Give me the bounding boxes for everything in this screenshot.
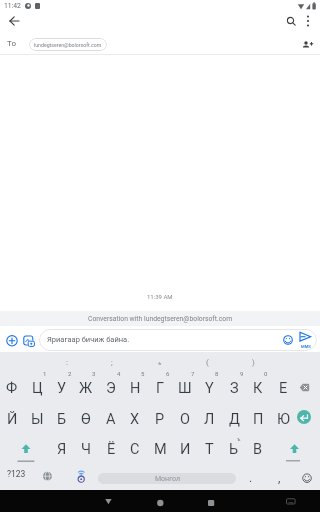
- button[interactable]: В: [246, 434, 270, 464]
- button[interactable]: [4, 333, 20, 349]
- staticText: :: [66, 358, 68, 367]
- button[interactable]: Е: [271, 373, 295, 403]
- staticText: Монгол: [155, 475, 180, 483]
- button[interactable]: [10, 434, 42, 463]
- staticText: У: [57, 380, 67, 397]
- button[interactable]: Ф: [0, 373, 24, 403]
- button[interactable]: М: [148, 434, 172, 464]
- staticText: Я: [57, 441, 67, 458]
- button[interactable]: [148, 490, 172, 512]
- button[interactable]: [295, 463, 319, 490]
- button[interactable]: [284, 490, 300, 512]
- button[interactable]: Ч: [74, 434, 98, 464]
- button[interactable]: С: [123, 434, 147, 464]
- button[interactable]: Ц: [25, 373, 49, 403]
- button[interactable]: [279, 434, 311, 463]
- button[interactable]: П: [246, 404, 270, 434]
- button[interactable]: [199, 490, 223, 512]
- staticText: Д: [229, 411, 240, 428]
- button[interactable]: [39, 329, 317, 351]
- button[interactable]: Ү: [197, 373, 221, 403]
- staticText: 4: [117, 370, 121, 377]
- button[interactable]: [279, 9, 303, 33]
- button[interactable]: [296, 36, 316, 54]
- staticText: Ю: [277, 411, 290, 428]
- button[interactable]: [69, 461, 93, 490]
- staticText: Х: [130, 411, 140, 428]
- button[interactable]: К: [246, 373, 270, 403]
- staticText: Н: [130, 380, 141, 397]
- staticText: Р: [155, 411, 165, 428]
- button[interactable]: Б: [50, 404, 74, 434]
- staticText: Ү: [205, 380, 214, 397]
- button[interactable]: [35, 461, 59, 490]
- staticText: 5: [141, 370, 145, 377]
- button[interactable]: У: [50, 373, 74, 403]
- button[interactable]: [297, 410, 311, 424]
- staticText: Ж: [79, 380, 93, 397]
- button[interactable]: Ё: [99, 434, 123, 464]
- staticText: 7: [191, 370, 195, 377]
- staticText: 11:39 AM: [147, 293, 173, 300]
- button[interactable]: lundegtseren@bolorsoft.com: [29, 38, 107, 51]
- staticText: ;: [111, 358, 113, 367]
- staticText: ъ: [237, 436, 241, 442]
- staticText: Яриагаар бичиж байна.: [47, 335, 130, 344]
- staticText: З: [230, 380, 239, 397]
- button[interactable]: [96, 490, 120, 512]
- staticText: 3: [92, 370, 96, 377]
- button[interactable]: Ы: [25, 404, 49, 434]
- button[interactable]: [296, 329, 316, 351]
- staticText: К: [253, 380, 263, 397]
- button[interactable]: Э: [99, 373, 123, 403]
- staticText: С: [130, 441, 140, 458]
- button[interactable]: ,: [267, 463, 291, 493]
- staticText: Ь: [229, 441, 239, 458]
- button[interactable]: Л: [197, 404, 221, 434]
- staticText: Б: [57, 411, 67, 428]
- staticText: М: [154, 441, 167, 458]
- staticText: Ш: [178, 380, 192, 397]
- staticText: ,: [278, 471, 281, 485]
- staticText: 6: [166, 370, 170, 377]
- button[interactable]: З: [222, 373, 246, 403]
- staticText: А: [106, 411, 116, 428]
- button[interactable]: Ж: [74, 373, 98, 403]
- button[interactable]: Н: [123, 373, 147, 403]
- button[interactable]: Монгол: [98, 473, 236, 484]
- button[interactable]: [281, 333, 295, 347]
- staticText: Ы: [31, 411, 44, 428]
- staticText: Э: [106, 380, 116, 397]
- button[interactable]: Д: [222, 404, 246, 434]
- button[interactable]: А: [99, 404, 123, 434]
- staticText: Ч: [81, 441, 91, 458]
- staticText: П: [253, 411, 264, 428]
- button[interactable]: О: [173, 404, 197, 434]
- button[interactable]: Г: [148, 373, 172, 403]
- button[interactable]: [298, 9, 318, 33]
- staticText: 0: [264, 370, 268, 377]
- button[interactable]: Х: [123, 404, 147, 434]
- staticText: (: [206, 358, 209, 367]
- button[interactable]: .: [239, 463, 263, 493]
- button[interactable]: Я: [50, 434, 74, 464]
- staticText: 1: [43, 370, 47, 377]
- button[interactable]: Ю: [271, 404, 295, 434]
- staticText: Т: [205, 441, 214, 458]
- button[interactable]: Ь: [222, 434, 246, 464]
- button[interactable]: Й: [0, 404, 24, 434]
- button[interactable]: [21, 333, 37, 349]
- button[interactable]: Р: [148, 404, 172, 434]
- staticText: 8: [215, 370, 219, 377]
- staticText: О: [180, 411, 190, 428]
- button[interactable]: ?123: [1, 459, 31, 489]
- button[interactable]: Ө: [74, 404, 98, 434]
- button[interactable]: [292, 372, 320, 402]
- button[interactable]: Т: [197, 434, 221, 464]
- button[interactable]: И: [173, 434, 197, 464]
- button[interactable]: Ш: [173, 373, 197, 403]
- staticText: 11:42: [4, 2, 21, 10]
- staticText: lundegtseren@bolorsoft.com: [34, 42, 102, 48]
- staticText: To: [7, 39, 16, 48]
- button[interactable]: [2, 9, 26, 33]
